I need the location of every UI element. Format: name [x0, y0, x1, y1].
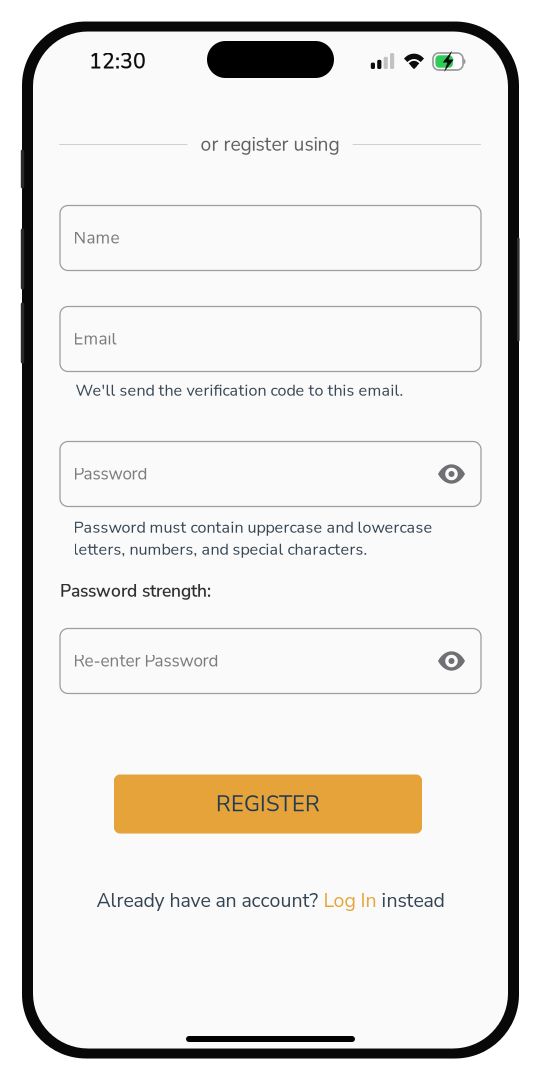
staticText: instead	[376, 887, 444, 914]
staticText: letters, numbers, and special characters…	[73, 538, 367, 560]
button[interactable]: Name	[60, 205, 481, 270]
button[interactable]: Log In	[323, 887, 376, 914]
staticText: or register using	[200, 131, 339, 158]
button[interactable]: Re-enter Password	[60, 628, 481, 693]
staticText: Password must contain uppercase and lowe…	[73, 516, 432, 538]
staticText: Already have an account?	[96, 887, 323, 914]
staticText: Email	[73, 327, 116, 351]
button[interactable]: Password	[60, 441, 481, 506]
staticText: Password strength:	[60, 579, 211, 603]
button[interactable]: Email	[60, 306, 481, 371]
staticText: REGISTER	[216, 789, 320, 819]
staticText: Password	[73, 462, 147, 486]
staticText: We'll send the verification code to this…	[75, 379, 403, 401]
button[interactable]: REGISTER	[114, 774, 422, 833]
staticText: Log In	[323, 887, 376, 914]
staticText: 12:30	[89, 47, 146, 76]
staticText: Re-enter Password	[73, 649, 218, 673]
staticText: Name	[73, 226, 119, 250]
